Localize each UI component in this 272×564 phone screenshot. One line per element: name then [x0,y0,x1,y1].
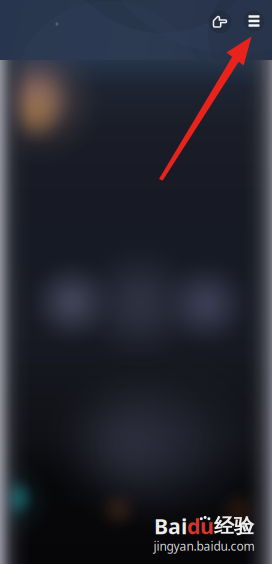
staticText: 经验 [214,514,254,538]
staticText: du [187,512,214,540]
button[interactable]: Pointer [204,6,236,38]
button[interactable]: Menu [238,5,270,37]
staticText: jingyan.baidu.com [153,538,254,554]
staticText: Bai [154,512,187,540]
